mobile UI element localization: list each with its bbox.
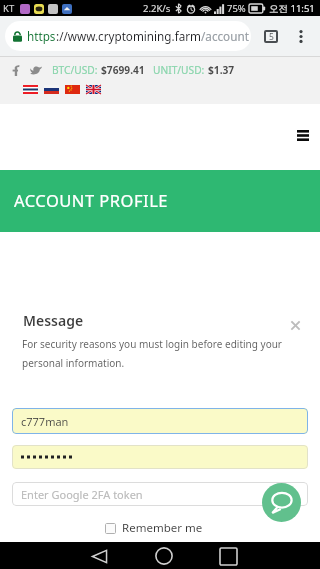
staticText: UNIT/USD:	[153, 63, 205, 77]
staticText: c777man	[21, 414, 69, 429]
button[interactable]: Close message	[286, 316, 304, 334]
staticText: 75%	[227, 2, 246, 15]
staticText: Enter Google 2FA token	[21, 487, 143, 502]
staticText: KT	[3, 2, 15, 15]
staticText: BTC/USD:	[52, 63, 98, 77]
button[interactable]: Tabs	[264, 30, 278, 43]
button[interactable]: c777man	[12, 408, 308, 434]
staticText: Message	[23, 311, 84, 329]
button[interactable]: Twitter	[29, 64, 42, 77]
staticText: /account	[201, 28, 249, 44]
button[interactable]: Chinese	[65, 85, 80, 94]
staticText: $1.37	[208, 63, 235, 77]
button[interactable]: Enter Google 2FA token	[12, 482, 308, 506]
staticText: 2.2K/s	[143, 2, 171, 15]
staticText: For security reasons you must login befo…	[22, 337, 306, 370]
button[interactable]: Russian	[44, 85, 59, 94]
staticText: 오전 11:51	[269, 2, 315, 15]
staticText: $7699.41	[101, 63, 145, 77]
button[interactable]: Home	[151, 543, 177, 569]
button[interactable]: Thai	[23, 85, 38, 94]
button[interactable]: Chat	[262, 483, 301, 522]
button[interactable]	[12, 445, 308, 469]
button[interactable]: Facebook	[9, 64, 22, 77]
staticText: Remember me	[122, 520, 203, 536]
button[interactable]: English	[86, 85, 101, 94]
button[interactable]: Back	[86, 543, 112, 569]
staticText: ACCOUNT PROFILE	[14, 189, 168, 211]
button[interactable]: Menu	[291, 123, 315, 147]
staticText: https	[27, 28, 56, 44]
staticText: ://www.cryptomining.farm	[56, 28, 201, 44]
button[interactable]: Remember me	[105, 520, 203, 536]
button[interactable]: https	[5, 21, 251, 51]
button[interactable]: More options	[291, 26, 311, 46]
button[interactable]: Recents	[215, 543, 241, 569]
staticText: 5	[269, 31, 274, 43]
